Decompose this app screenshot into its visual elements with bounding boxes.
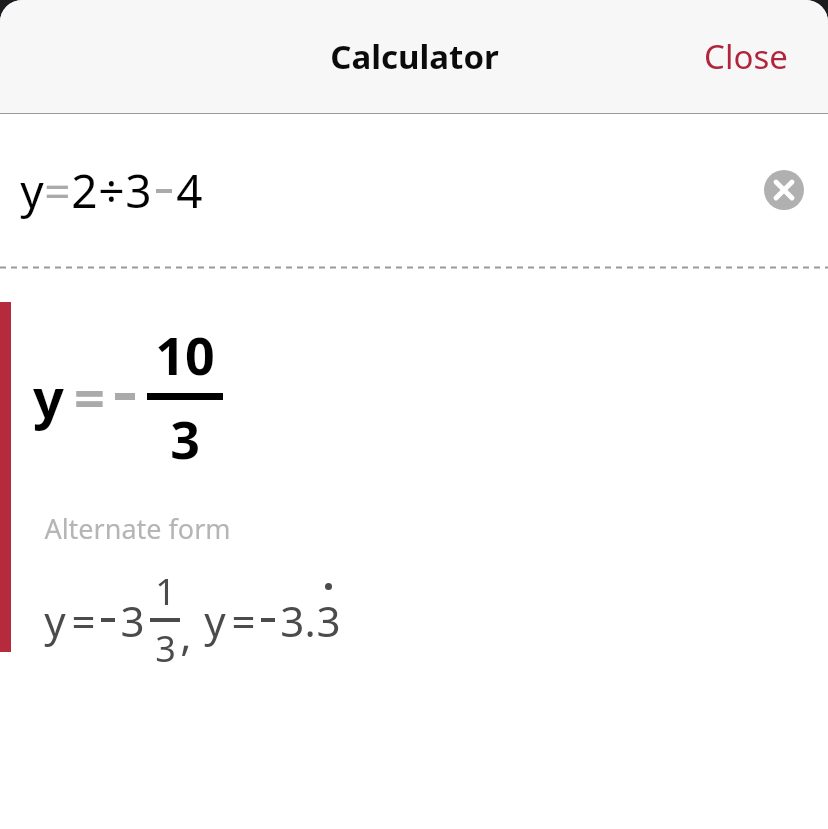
staticText: Close <box>704 34 788 79</box>
staticText: , <box>180 606 192 663</box>
staticText: y <box>20 159 44 222</box>
staticText: 4 <box>176 159 203 222</box>
staticText: = <box>74 360 105 434</box>
staticText: 3 <box>316 592 341 649</box>
staticText: 3 <box>120 592 145 649</box>
staticText: y <box>204 592 226 649</box>
staticText: ÷ <box>98 159 125 222</box>
staticText: = <box>71 592 96 649</box>
staticText: 3 <box>125 159 152 222</box>
staticText: = <box>231 592 256 649</box>
button[interactable]: Close <box>664 14 828 99</box>
staticText: Alternate form <box>44 510 231 547</box>
staticText: 3 <box>170 403 200 474</box>
staticText: 3 <box>155 624 176 673</box>
staticText: Calculator <box>330 34 499 79</box>
staticText: 3. <box>280 592 316 649</box>
button[interactable]: Clear expression <box>762 168 806 212</box>
staticText: = <box>44 159 71 222</box>
staticText: 2 <box>71 159 98 222</box>
staticText: y <box>33 360 64 434</box>
staticText: y <box>44 592 66 649</box>
staticText: 1 <box>155 567 176 616</box>
button[interactable]: y <box>11 269 828 673</box>
staticText: 10 <box>155 319 215 390</box>
